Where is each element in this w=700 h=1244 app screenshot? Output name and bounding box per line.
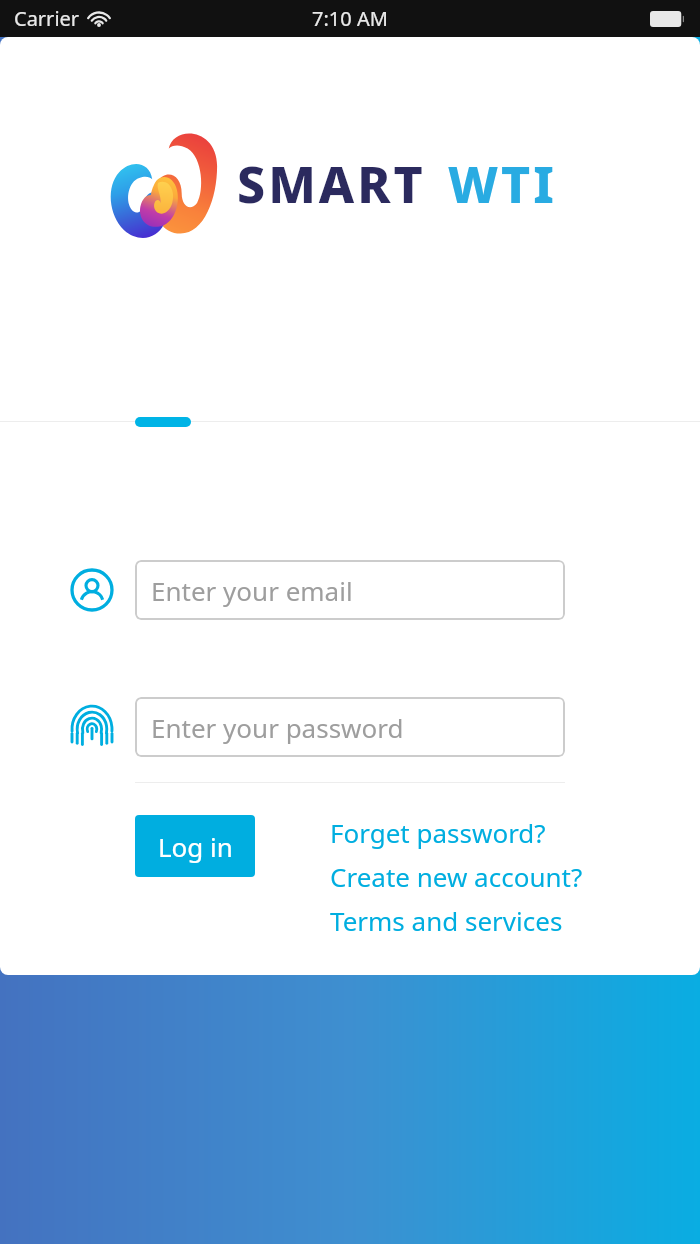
- button[interactable]: Enter your email: [135, 560, 565, 620]
- staticText: Enter your email: [151, 573, 353, 608]
- button[interactable]: Forget password?: [330, 815, 546, 850]
- staticText: Log in: [158, 829, 233, 864]
- staticText: Carrier: [14, 5, 80, 32]
- staticText: 7:10 AM: [312, 5, 388, 32]
- button[interactable]: Account: [70, 568, 114, 612]
- button[interactable]: [135, 417, 191, 427]
- button[interactable]: Fingerprint login: [70, 705, 114, 749]
- staticText: Create new account?: [330, 859, 583, 894]
- button[interactable]: Enter your password: [135, 697, 565, 757]
- staticText: Forget password?: [330, 815, 546, 850]
- staticText: Terms and services: [330, 903, 563, 938]
- staticText: SMART: [237, 150, 426, 218]
- staticText: WTI: [448, 150, 557, 218]
- button[interactable]: Terms and services: [330, 903, 563, 938]
- button[interactable]: Log in: [135, 815, 255, 877]
- button[interactable]: Create new account?: [330, 859, 583, 894]
- staticText: Enter your password: [151, 710, 404, 745]
